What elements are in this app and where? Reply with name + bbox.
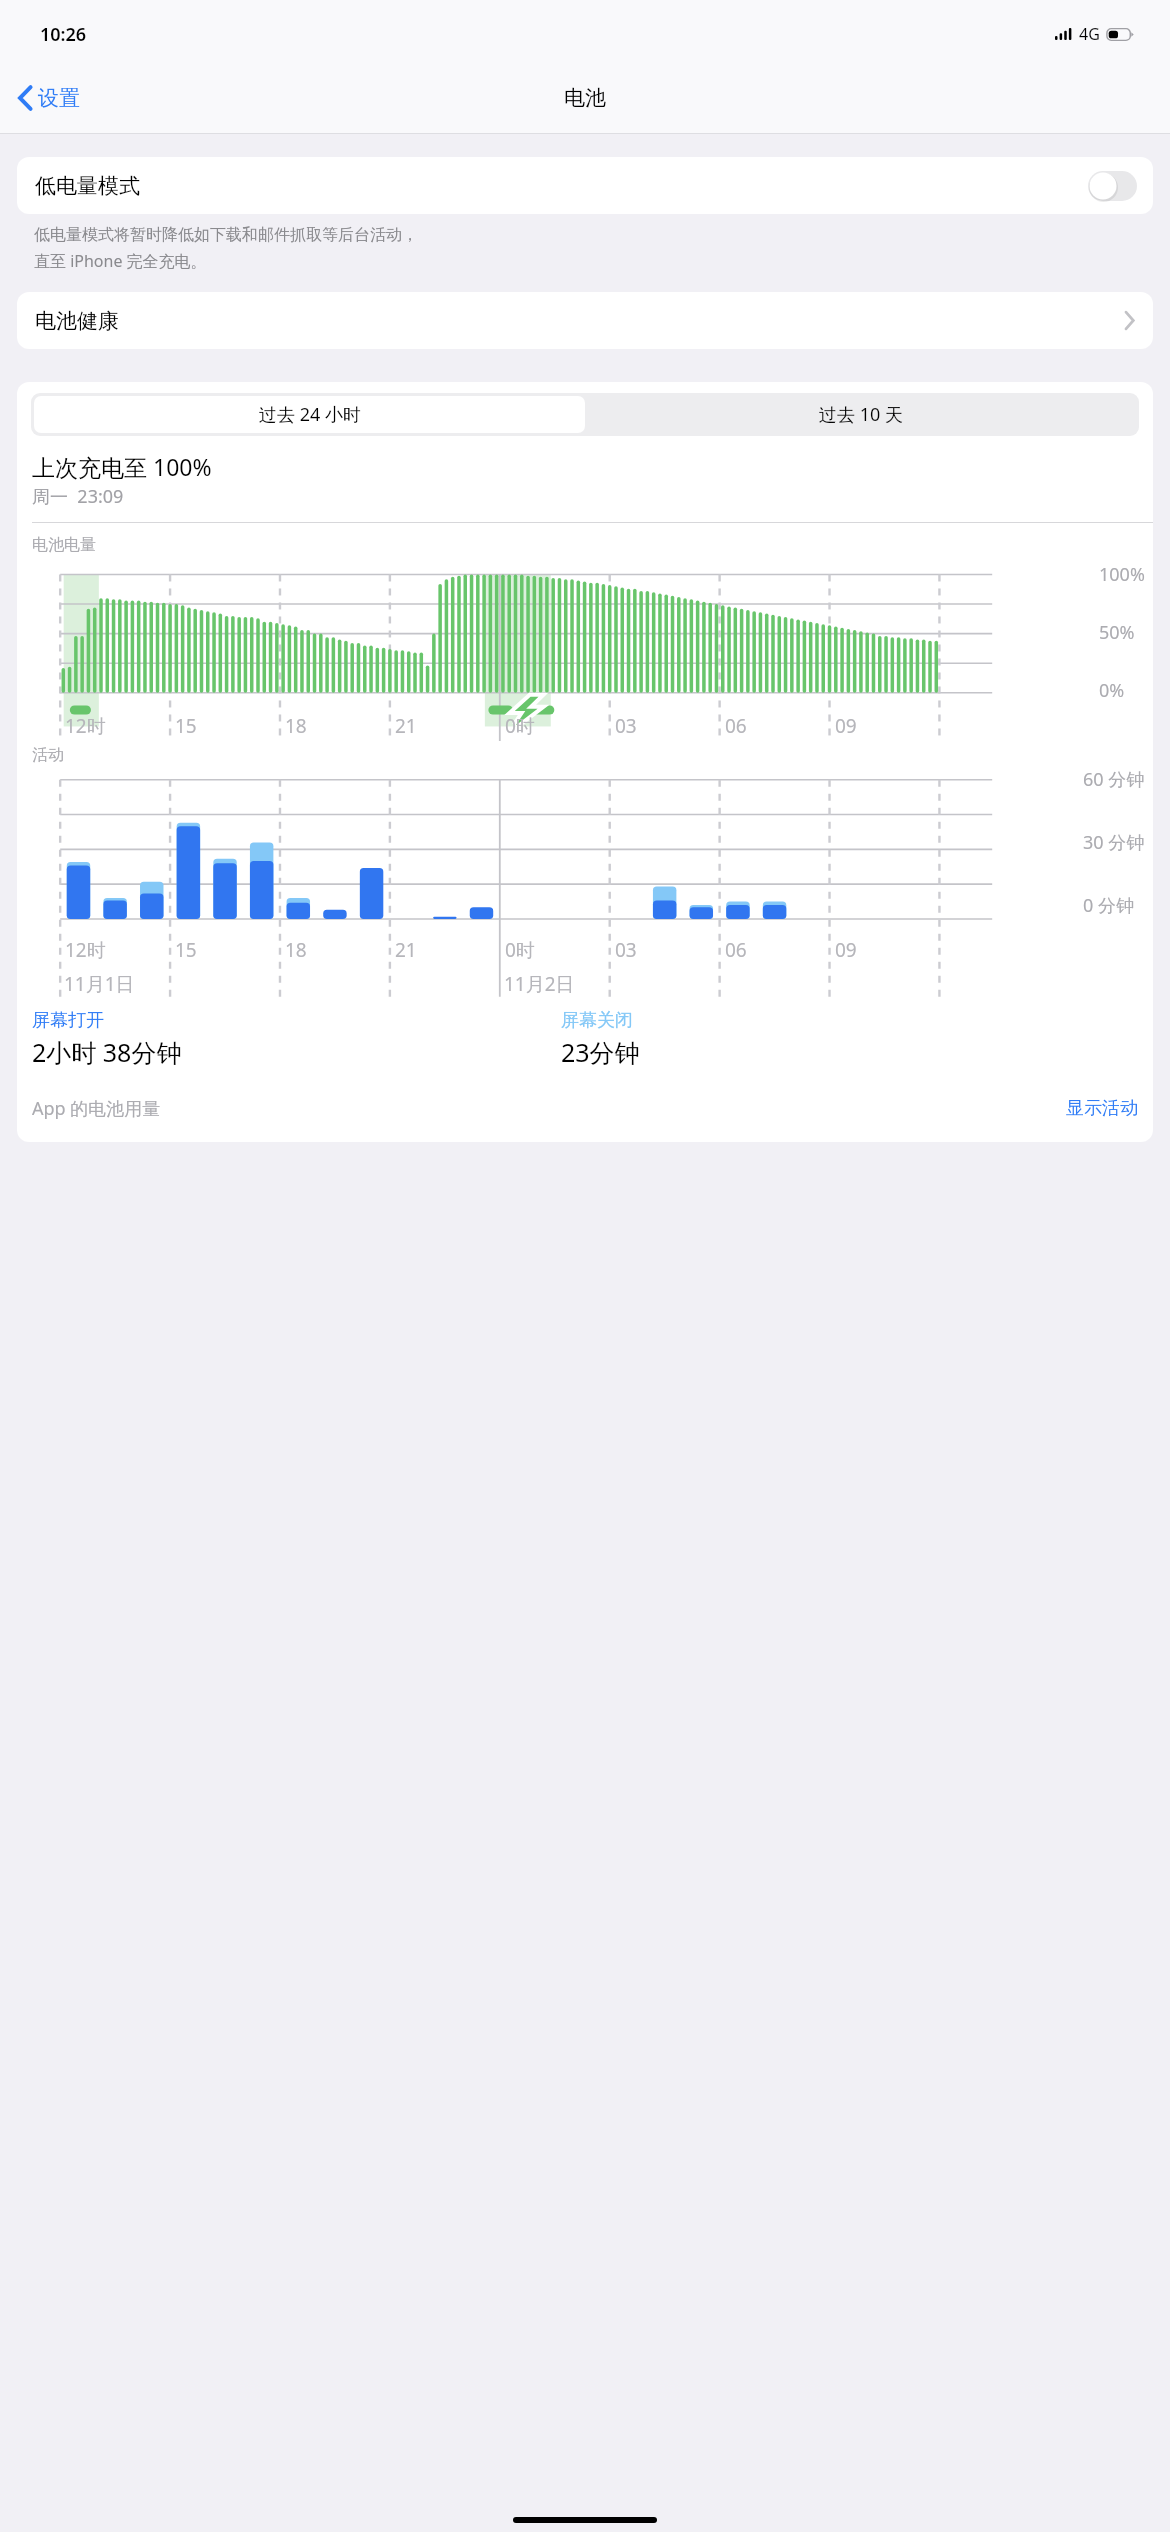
staticText: 15 (175, 713, 197, 739)
staticText: 周一 23:09 (32, 484, 124, 509)
staticText: 设置 (38, 85, 80, 111)
staticText: 10:26 (40, 22, 87, 47)
staticText: 21 (395, 713, 417, 739)
staticText: 电池电量 (32, 535, 96, 555)
staticText: 15 (175, 937, 197, 963)
staticText: 上次充电至 100% (32, 451, 212, 482)
staticText: 显示活动 (1066, 1097, 1138, 1120)
staticText: 低电量模式 (35, 173, 140, 199)
button[interactable]: 低电量模式 (17, 157, 1153, 214)
staticText: 12时 (65, 937, 106, 963)
staticText: 0时 (505, 937, 535, 963)
staticText: 过去 10 天 (819, 402, 903, 427)
other: Back (18, 86, 32, 110)
staticText: 12时 (65, 713, 106, 739)
staticText: 0% (1099, 678, 1125, 703)
staticText: App 的电池用量 (32, 1096, 161, 1121)
staticText: 电池健康 (35, 308, 119, 334)
staticText: 屏幕关闭 (561, 1009, 633, 1032)
staticText: 18 (285, 713, 307, 739)
staticText: 11月2日 (504, 971, 575, 997)
staticText: 50% (1099, 620, 1135, 645)
staticText: 过去 24 小时 (259, 402, 361, 427)
staticText: 09 (835, 937, 857, 963)
staticText: 30 分钟 (1083, 830, 1145, 855)
staticText: 0时 (505, 713, 535, 739)
button[interactable]: Back (10, 79, 90, 117)
staticText: 0 分钟 (1083, 893, 1134, 918)
staticText: 21 (395, 937, 417, 963)
staticText: 06 (725, 713, 747, 739)
staticText: 100% (1099, 562, 1145, 587)
staticText: 18 (285, 937, 307, 963)
staticText: 活动 (32, 745, 64, 765)
staticText: 03 (615, 713, 637, 739)
staticText: 11月1日 (64, 971, 135, 997)
staticText: 60 分钟 (1083, 767, 1145, 792)
staticText: 23分钟 (561, 1035, 640, 1069)
staticText: 03 (615, 937, 637, 963)
staticText: 06 (725, 937, 747, 963)
staticText: 09 (835, 713, 857, 739)
button[interactable]: 显示活动 (1062, 1093, 1142, 1124)
staticText: 2小时 38分钟 (32, 1035, 182, 1069)
staticText: 4G (1079, 23, 1100, 45)
button[interactable]: 过去 10 天 (585, 396, 1136, 433)
button[interactable]: 过去 24 小时 (34, 396, 585, 433)
staticText: 屏幕打开 (32, 1009, 104, 1032)
button[interactable]: 电池健康 (17, 292, 1153, 349)
staticText: 低电量模式将暂时降低如下载和邮件抓取等后台活动， 直至 iPhone 完全充电。 (34, 225, 418, 271)
staticText: 电池 (564, 85, 606, 111)
